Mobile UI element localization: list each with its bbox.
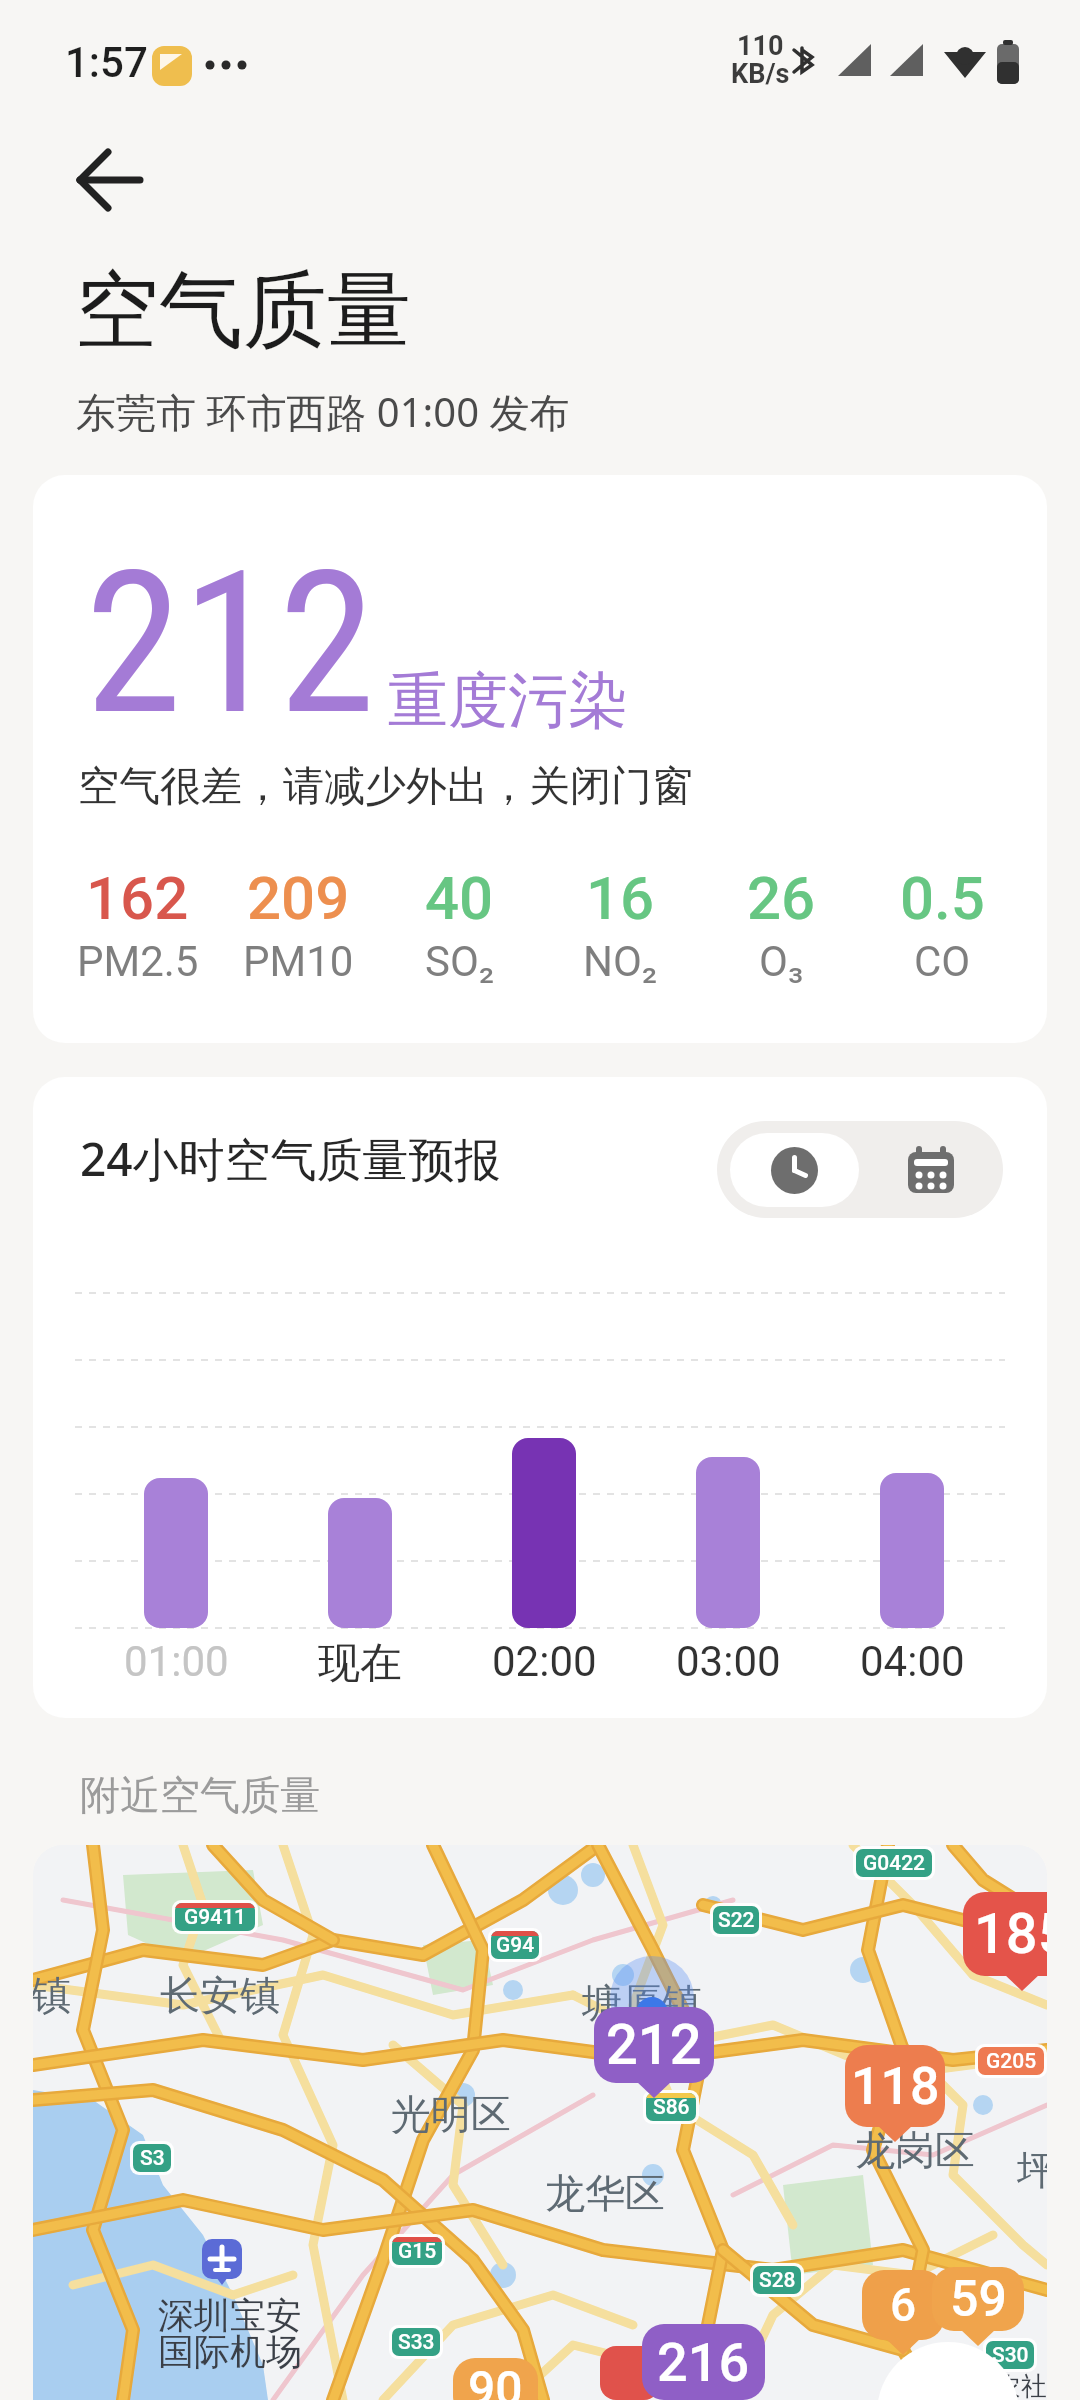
staticText: SO₂ [425,937,495,986]
button[interactable]: 16 [540,863,701,986]
staticText: 重度污染 [388,663,628,739]
staticText: 110 [737,30,784,62]
button[interactable]: 26 [701,863,862,986]
staticText: 6 [890,2278,917,2332]
staticText: PM2.5 [77,937,199,986]
staticText: 农社区 [995,2370,1047,2400]
staticText: 212 [85,529,376,759]
button[interactable]: 185 [963,1892,1047,1992]
staticText: 04:00 [860,1637,965,1686]
staticText: CO [914,937,971,986]
staticText: 1:57 [65,38,148,87]
staticText: 空气很差，请减少外出，关闭门窗 [78,761,693,813]
staticText: KB/s [731,58,790,90]
staticText: G205 [986,2049,1037,2074]
staticText: 216 [657,2331,750,2394]
button[interactable]: 209 [218,863,379,986]
button[interactable]: 212 [594,2007,714,2099]
staticText: 现在 [318,1637,402,1690]
staticText: 90 [468,2360,523,2400]
staticText: 深圳宝安 [158,2293,302,2338]
staticText: S86 [653,2095,690,2120]
button[interactable]: 90 [453,2358,538,2400]
button[interactable]: 镇 [33,1845,1047,2400]
staticText: 0.5 [900,863,985,933]
staticText: 212 [606,2012,702,2078]
staticText: 长安镇 [160,1970,280,2020]
staticText: 附近空气质量 [80,1770,320,1820]
staticText: 118 [851,2056,940,2117]
staticText: 162 [86,863,189,933]
staticText: 16 [586,863,655,933]
staticText: S22 [718,1908,755,1933]
staticText: 40 [425,863,494,933]
button[interactable] [717,1121,1003,1218]
button[interactable]: 6 [862,2270,944,2356]
staticText: 59 [950,2270,1007,2329]
staticText: 光明区 [391,2089,511,2139]
staticText: 塘厦镇 [582,1978,702,2028]
staticText: 185 [974,1901,1047,1967]
staticText: 国际机场 [158,2329,302,2374]
staticText: 龙华区 [545,2168,665,2218]
staticText: 镇 [33,1970,71,2020]
staticText: 02:00 [492,1637,597,1686]
staticText: S30 [992,2343,1029,2368]
staticText: S3 [140,2146,165,2171]
button[interactable]: 0.5 [862,863,1023,986]
button[interactable]: 118 [845,2045,945,2143]
staticText: 龙岗区 [855,2125,975,2175]
button[interactable] [60,135,160,225]
staticText: NO₂ [583,937,658,986]
staticText: 26 [747,863,816,933]
staticText: S33 [398,2330,435,2355]
staticText: G94 [496,1933,535,1958]
staticText: G0422 [863,1851,926,1876]
staticText: 209 [247,863,350,933]
staticText: 03:00 [676,1637,781,1686]
staticText: S28 [759,2268,796,2293]
button[interactable]: 162 [57,863,218,986]
staticText: 01:00 [124,1637,229,1686]
staticText: O₃ [759,937,804,986]
button[interactable]: 59 [932,2267,1024,2347]
staticText: 24小时空气质量预报 [80,1127,501,1190]
staticText: G9411 [184,1905,247,1930]
staticText: 坪 [1017,2145,1047,2195]
button[interactable]: 40 [379,863,540,986]
staticText: 东莞市 环市西路 01:00 发布 [76,384,570,439]
button[interactable]: 216 [642,2324,765,2400]
staticText: 空气质量 [75,258,411,364]
staticText: G15 [398,2239,437,2264]
staticText: PM10 [243,937,354,986]
